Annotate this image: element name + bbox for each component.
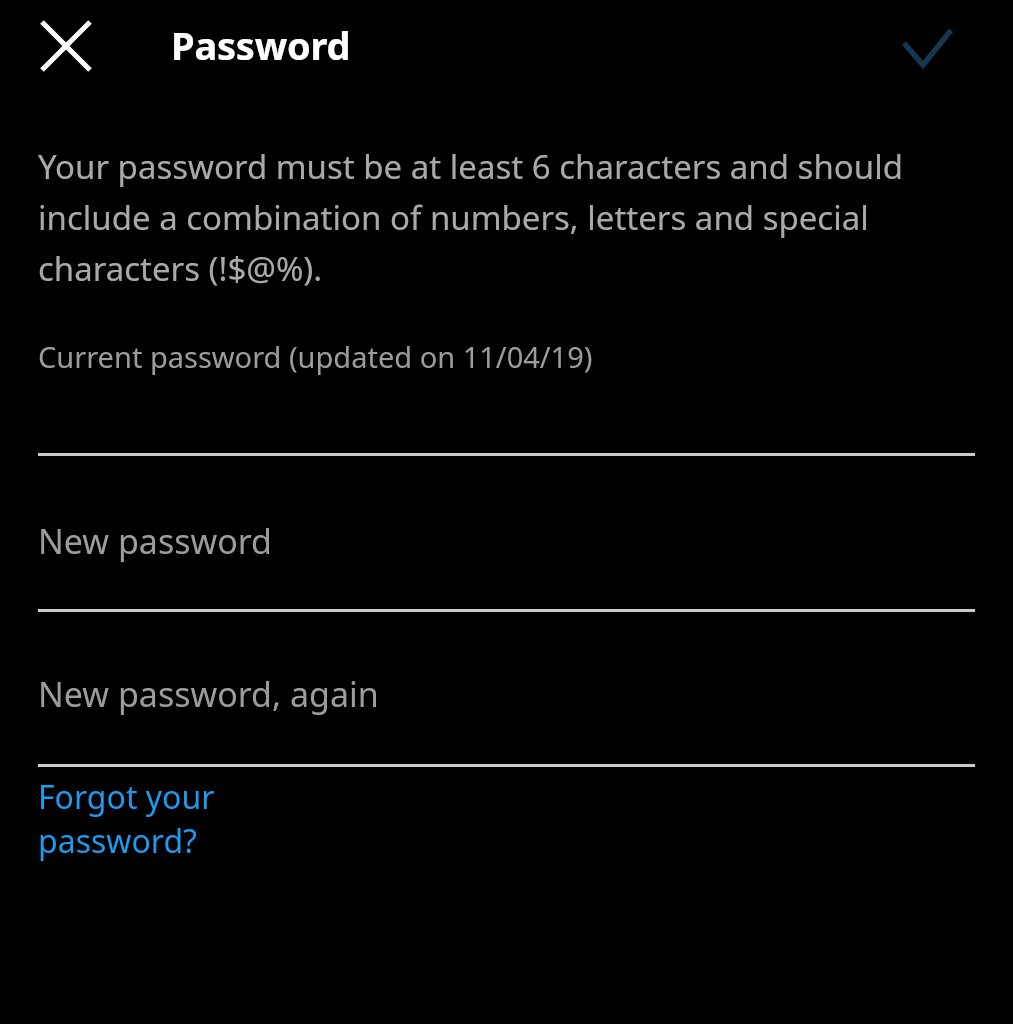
- staticText: Current password (updated on 11/04/19): [38, 337, 593, 376]
- staticText: New password: [38, 518, 273, 564]
- button[interactable]: Forgot your password?: [38, 767, 368, 867]
- staticText: New password, again: [38, 671, 379, 717]
- staticText: Your password must be at least 6 charact…: [38, 144, 975, 291]
- button[interactable]: Current password (updated on 11/04/19): [38, 336, 975, 453]
- button[interactable]: New password: [38, 456, 975, 609]
- staticText: Forgot your password?: [38, 775, 368, 863]
- button[interactable]: Close: [22, 2, 110, 90]
- staticText: Password: [171, 19, 351, 71]
- button[interactable]: New password, again: [38, 612, 975, 764]
- button[interactable]: Save: [882, 2, 972, 92]
